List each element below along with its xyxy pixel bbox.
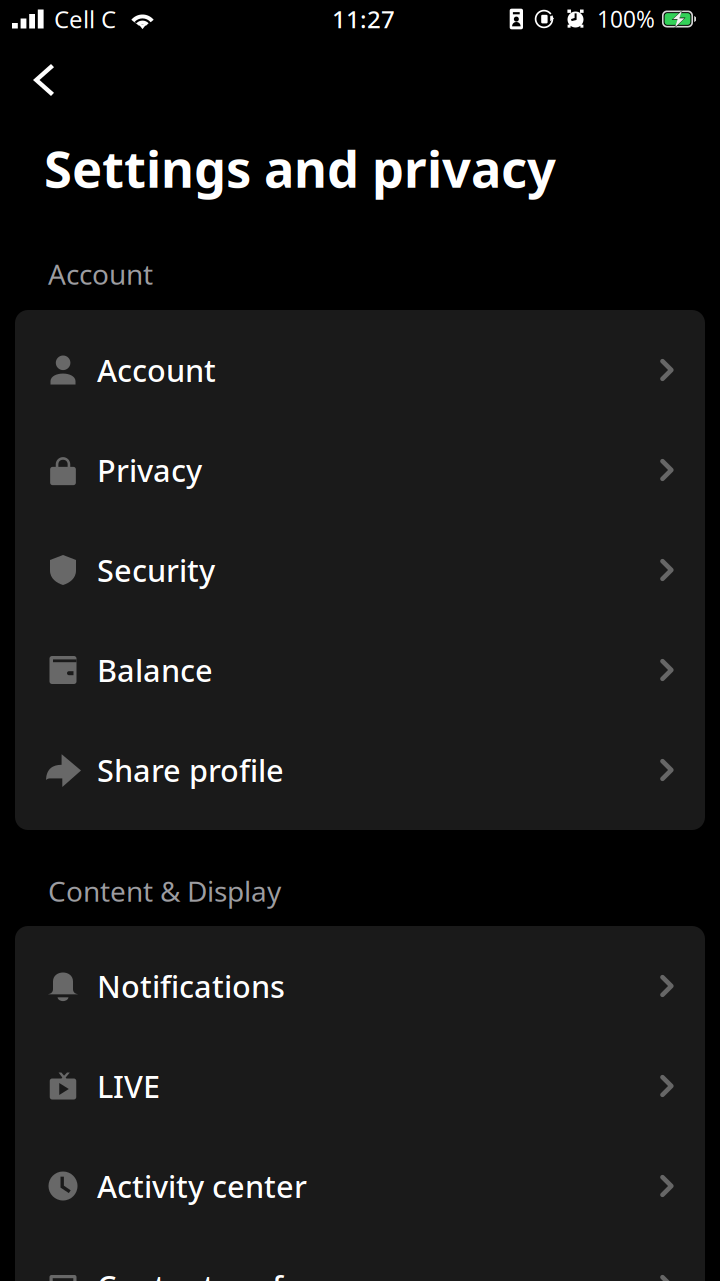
staticText: Account — [48, 255, 153, 293]
button[interactable]: Privacy — [15, 420, 705, 520]
staticText: Share profile — [97, 750, 284, 790]
button[interactable]: Notifications — [15, 936, 705, 1036]
button[interactable]: Share profile — [15, 720, 705, 820]
button[interactable]: Balance — [15, 620, 705, 720]
staticText: Activity center — [97, 1166, 307, 1206]
button[interactable]: LIVE — [15, 1036, 705, 1136]
staticText: Account — [97, 350, 216, 390]
staticText: Notifications — [97, 966, 285, 1006]
staticText: 11:27 — [332, 3, 395, 35]
staticText: Settings and privacy — [44, 134, 556, 202]
staticText: Content & Display — [48, 872, 281, 910]
staticText: Balance — [97, 650, 213, 690]
staticText: Content preferences — [97, 1266, 398, 1281]
staticText: 100% — [597, 4, 655, 34]
button[interactable]: Content preferences — [15, 1236, 705, 1281]
staticText: Cell C — [54, 3, 116, 35]
button[interactable]: Security — [15, 520, 705, 620]
staticText: Privacy — [97, 450, 202, 490]
button[interactable]: Activity center — [15, 1136, 705, 1236]
staticText: Security — [97, 550, 215, 590]
button[interactable]: Back — [0, 49, 79, 111]
staticText: LIVE — [97, 1066, 160, 1106]
button[interactable]: Account — [15, 320, 705, 420]
